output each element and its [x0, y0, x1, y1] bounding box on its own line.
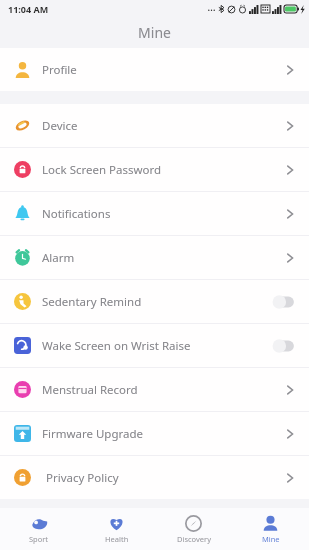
staticText: Lock Screen Password: [42, 162, 283, 178]
staticText: Mine: [138, 23, 171, 42]
button[interactable]: Profile: [0, 48, 309, 91]
button[interactable]: Lock Screen Password: [0, 148, 309, 191]
staticText: Firmware Upgrade: [42, 426, 283, 442]
staticText: Privacy Policy: [46, 470, 283, 486]
button[interactable]: Health: [78, 508, 155, 550]
button[interactable]: Device: [0, 104, 309, 147]
staticText: Discovery: [177, 534, 211, 544]
staticText: Notifications: [42, 206, 283, 222]
staticText: Alarm: [42, 250, 283, 266]
button[interactable]: Firmware Upgrade: [0, 412, 309, 455]
staticText: Mine: [262, 534, 280, 544]
staticText: Sedentary Remind: [42, 294, 271, 310]
staticText: Wake Screen on Wrist Raise: [42, 338, 271, 354]
button[interactable]: Sport: [0, 508, 78, 550]
staticText: 11:04 AM: [8, 3, 49, 15]
staticText: Health: [105, 534, 129, 544]
button[interactable]: Mine: [232, 508, 309, 550]
button[interactable]: Privacy Policy: [0, 456, 309, 499]
button[interactable]: Sedentary Remind: [0, 280, 309, 323]
button[interactable]: Discovery: [155, 508, 232, 550]
button[interactable]: Menstrual Record: [0, 368, 309, 411]
staticText: Device: [42, 118, 283, 134]
button[interactable]: Notifications: [0, 192, 309, 235]
button[interactable]: Wake Screen on Wrist Raise: [0, 324, 309, 367]
staticText: Sport: [29, 534, 49, 544]
staticText: Menstrual Record: [42, 382, 283, 398]
staticText: Profile: [42, 62, 283, 78]
button[interactable]: Alarm: [0, 236, 309, 279]
